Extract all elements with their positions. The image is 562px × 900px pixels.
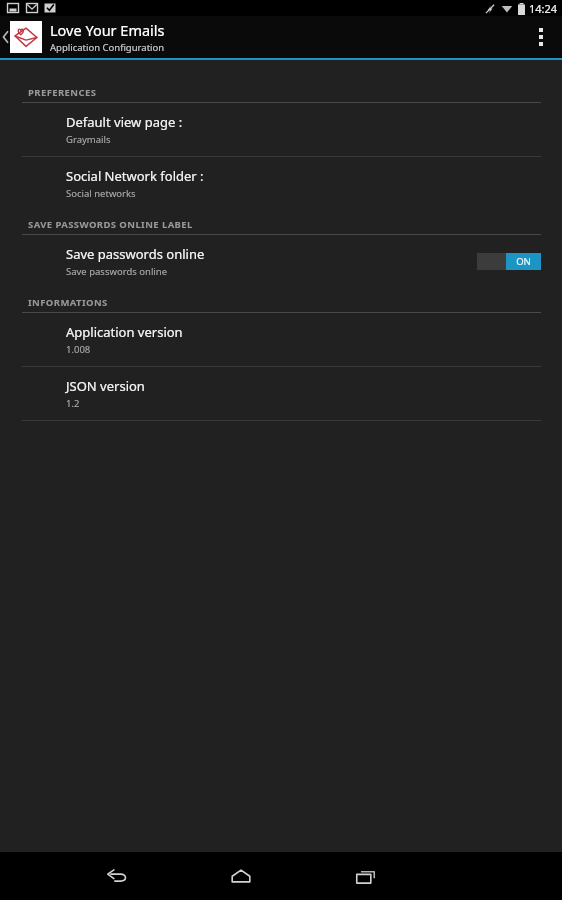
button[interactable]: Application version — [0, 313, 562, 366]
staticText: INFORMATIONS — [28, 296, 108, 309]
staticText: ON — [516, 255, 531, 268]
staticText: Save passwords online — [66, 265, 168, 278]
staticText: Default view page : — [66, 113, 183, 131]
staticText: Love Your Emails — [50, 20, 165, 40]
staticText: 1.2 — [66, 397, 80, 410]
staticText: PREFERENCES — [28, 86, 97, 99]
staticText: Graymails — [66, 133, 111, 146]
staticText: 14:24 — [529, 1, 558, 16]
staticText: Social Network folder : — [66, 167, 204, 185]
button[interactable]: Home — [214, 852, 268, 900]
staticText: Save passwords online — [66, 245, 205, 263]
button[interactable]: Save passwords online toggle, on — [477, 253, 541, 270]
button[interactable]: More options — [520, 16, 562, 58]
button[interactable]: Social Network folder : — [0, 157, 562, 210]
button[interactable]: Default view page : — [0, 103, 562, 156]
button[interactable]: Navigate up — [0, 16, 10, 58]
staticText: 1.008 — [66, 343, 91, 356]
staticText: Social networks — [66, 187, 136, 200]
button[interactable]: JSON version — [0, 367, 562, 420]
button[interactable]: Save passwords online — [0, 235, 562, 288]
staticText: Application Configuration — [50, 41, 165, 54]
button[interactable]: Love Your Emails — [10, 20, 165, 54]
staticText: SAVE PASSWORDS ONLINE LABEL — [28, 218, 193, 231]
staticText: Application version — [66, 323, 183, 341]
staticText: JSON version — [66, 377, 145, 395]
button[interactable]: Back — [90, 852, 144, 900]
button[interactable]: Recent apps — [338, 852, 392, 900]
